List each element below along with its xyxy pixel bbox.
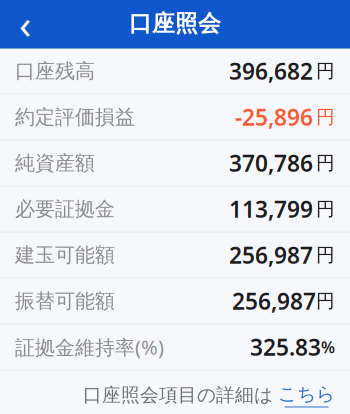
staticText: こちら: [278, 382, 335, 405]
staticText: 円: [316, 60, 335, 82]
staticText: 325.83: [250, 332, 321, 362]
staticText: 113,799: [229, 194, 313, 224]
staticText: ‹: [19, 0, 31, 50]
staticText: 口座残高: [15, 59, 95, 83]
staticText: 396,682: [229, 56, 313, 86]
staticText: 円: [316, 198, 335, 220]
button[interactable]: 戻る: [0, 0, 50, 48]
staticText: %: [321, 336, 335, 358]
staticText: 純資産額: [15, 151, 95, 175]
staticText: 建玉可能額: [15, 243, 115, 267]
staticText: 振替可能額: [15, 289, 115, 313]
staticText: 口座照会: [129, 10, 221, 37]
staticText: 約定評価損益: [15, 105, 135, 129]
staticText: 証拠金維持率(%): [15, 334, 164, 360]
staticText: 256,987: [232, 286, 316, 316]
button[interactable]: 口座照会項目の詳細は: [83, 382, 335, 407]
staticText: 256,987: [229, 240, 313, 270]
staticText: 370,786: [229, 148, 313, 178]
staticText: 円: [316, 152, 335, 174]
staticText: 円: [316, 106, 335, 128]
staticText: 円: [316, 244, 335, 266]
staticText: 必要証拠金: [15, 197, 115, 221]
staticText: 口座照会項目の詳細は: [83, 383, 273, 406]
staticText: -25,896: [235, 102, 313, 132]
staticText: 円: [316, 290, 335, 312]
